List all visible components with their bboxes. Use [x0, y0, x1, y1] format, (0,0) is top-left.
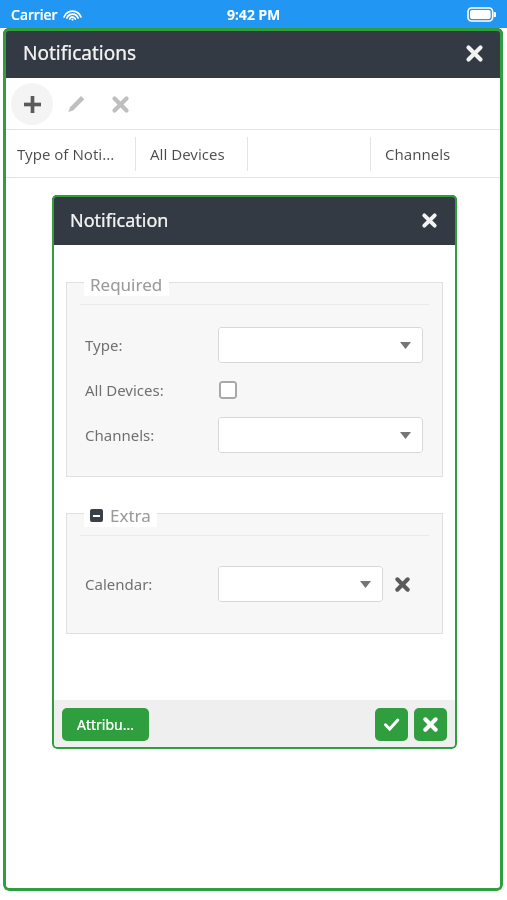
staticText: 9:42 PM	[227, 5, 281, 24]
staticText: Type of Noti...	[17, 144, 115, 164]
button[interactable]: Save	[375, 708, 408, 741]
staticText: All Devices:	[85, 380, 164, 400]
button[interactable]: Close dialog	[415, 206, 443, 234]
button[interactable]: All Devices checkbox	[219, 381, 237, 399]
staticText: Required	[90, 273, 163, 296]
button[interactable]: Clear calendar	[389, 571, 415, 597]
button[interactable]: Edit	[55, 83, 97, 125]
button[interactable]: Dropdown	[218, 566, 383, 602]
button[interactable]: Dropdown	[218, 327, 423, 363]
button[interactable]: Type of Noti...	[3, 130, 135, 177]
staticText: All Devices	[150, 144, 225, 164]
button[interactable]: Delete	[99, 83, 141, 125]
button[interactable]: Channels	[371, 130, 503, 177]
button[interactable]: Close	[459, 38, 489, 68]
staticText: Carrier	[11, 5, 58, 24]
staticText: Channels:	[85, 425, 155, 445]
button[interactable]: Dropdown	[218, 417, 423, 453]
button[interactable]: Attribu...	[62, 708, 149, 741]
staticText: Notifications	[23, 40, 137, 66]
staticText: Calendar:	[85, 574, 153, 594]
button[interactable]: Add	[11, 83, 53, 125]
button[interactable]: Collapse Extra	[90, 509, 103, 522]
staticText: Notification	[70, 208, 169, 233]
staticText: Type:	[85, 335, 123, 355]
button[interactable]: All Devices	[136, 130, 247, 177]
staticText: Channels	[385, 144, 451, 164]
staticText: Extra	[110, 504, 151, 527]
button[interactable]: Cancel	[414, 708, 447, 741]
staticText: Attribu...	[77, 715, 134, 734]
